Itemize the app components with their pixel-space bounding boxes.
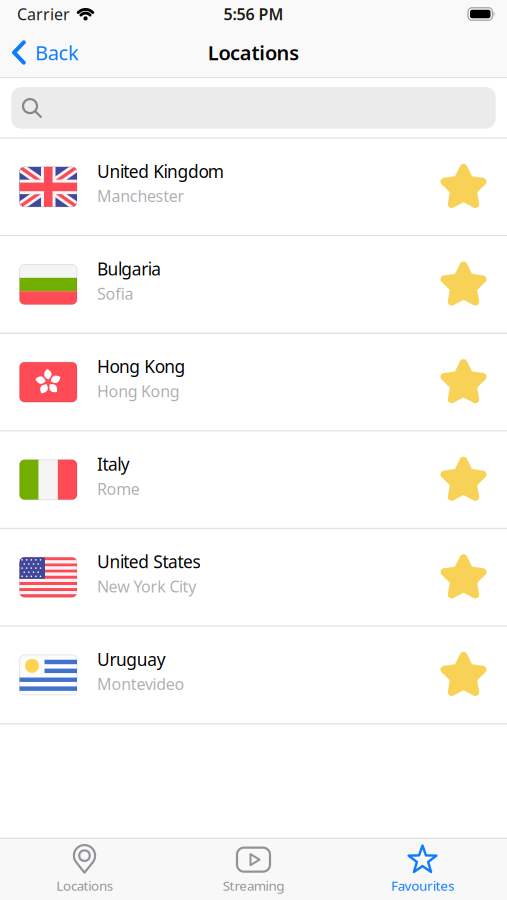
staticText: Hong Kong [97,355,186,378]
button[interactable]: Hong Kong [0,334,507,430]
button[interactable]: Italy [0,432,507,528]
staticText: Carrier [17,3,70,25]
staticText: Locations [56,877,113,894]
staticText: New York City [97,576,196,597]
button[interactable]: Uruguay [0,627,507,723]
button[interactable]: Favourites [338,840,507,898]
staticText: Locations [208,39,299,66]
staticText: Streaming [223,877,284,894]
staticText: Italy [97,452,130,475]
button[interactable]: Favourite [439,553,487,601]
staticText: United States [97,550,200,573]
staticText: United Kingdom [97,160,224,183]
button[interactable]: Streaming [169,840,338,898]
staticText: Montevideo [97,673,184,694]
button[interactable]: United Kingdom [0,139,507,235]
button[interactable]: Back [0,31,79,74]
button[interactable]: Locations [0,840,169,898]
staticText: 5:56 PM [223,3,283,25]
button[interactable]: Favourite [439,456,487,504]
button[interactable]: Favourite [439,163,487,211]
staticText: Favourites [391,877,454,894]
staticText: Hong Kong [97,380,180,402]
button[interactable]: United States [0,529,507,625]
staticText: Back [35,39,79,66]
staticText: Manchester [97,185,184,206]
staticText: Bulgaria [97,257,161,280]
button[interactable]: Favourite [439,260,487,308]
staticText: Sofia [97,283,133,304]
staticText: Uruguay [97,648,166,671]
button[interactable]: Favourite [439,651,487,699]
button[interactable]: Bulgaria [0,236,507,333]
button[interactable]: Favourite [439,358,487,406]
staticText: Rome [97,478,140,499]
